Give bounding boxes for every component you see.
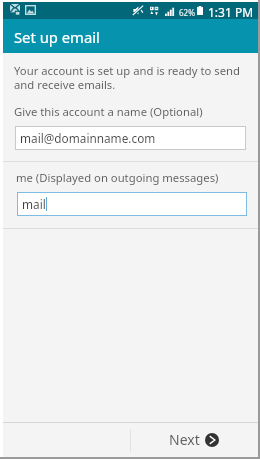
staticText: mail@domainname.com: [20, 130, 156, 146]
staticText: Give this account a name (Optional): [14, 104, 203, 119]
staticText: me (Displayed on outgoing messages): [16, 170, 219, 185]
staticText: Your account is set up and is ready to s…: [14, 63, 240, 92]
button[interactable]: mail: [17, 192, 247, 216]
button[interactable]: mail@domainname.com: [15, 126, 246, 150]
staticText: 62%: [179, 7, 195, 18]
other: Next: [205, 433, 219, 447]
button[interactable]: Set up email: [3, 19, 258, 53]
button[interactable]: Next: [169, 430, 219, 449]
staticText: Set up email: [14, 27, 100, 47]
staticText: mail: [22, 196, 46, 212]
staticText: 1:31 PM: [208, 4, 254, 20]
staticText: Next: [169, 430, 200, 449]
